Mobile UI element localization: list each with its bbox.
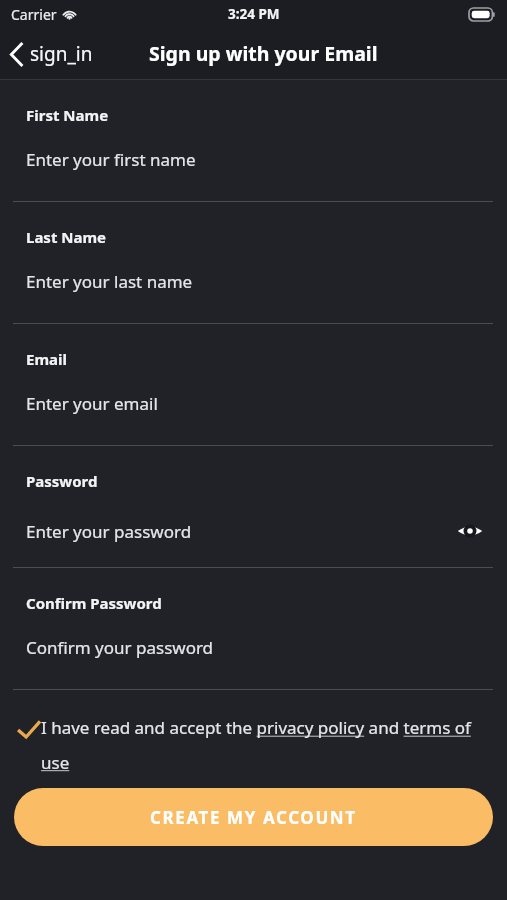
staticText: Confirm your password [26,636,214,659]
button[interactable]: CREATE MY ACCOUNT [14,788,493,846]
button[interactable]: First Name [0,80,507,201]
staticText: Carrier [11,5,57,24]
staticText: Sign up with your Email [149,40,378,67]
button[interactable]: Password [0,446,507,567]
button[interactable]: Email [0,324,507,445]
staticText: Enter your last name [26,270,193,293]
staticText: Last Name [26,227,107,247]
staticText: Enter your email [26,392,158,415]
staticText: Enter your first name [26,148,196,171]
staticText: Confirm Password [26,593,162,613]
button[interactable]: Confirm Password [0,568,507,689]
button[interactable]: I have read and accept the privacy polic… [0,690,507,774]
staticText: sign_in [30,41,93,67]
staticText: 3:24 PM [228,5,280,23]
staticText: I have read and accept the privacy polic… [41,716,481,774]
staticText: Enter your password [26,520,192,543]
staticText: First Name [26,105,109,125]
button[interactable]: Last Name [0,202,507,323]
staticText: Email [26,349,67,369]
button[interactable]: sign_in [0,35,101,73]
staticText: CREATE MY ACCOUNT [150,806,357,829]
button[interactable]: Show password [453,514,487,548]
staticText: Password [26,471,98,491]
